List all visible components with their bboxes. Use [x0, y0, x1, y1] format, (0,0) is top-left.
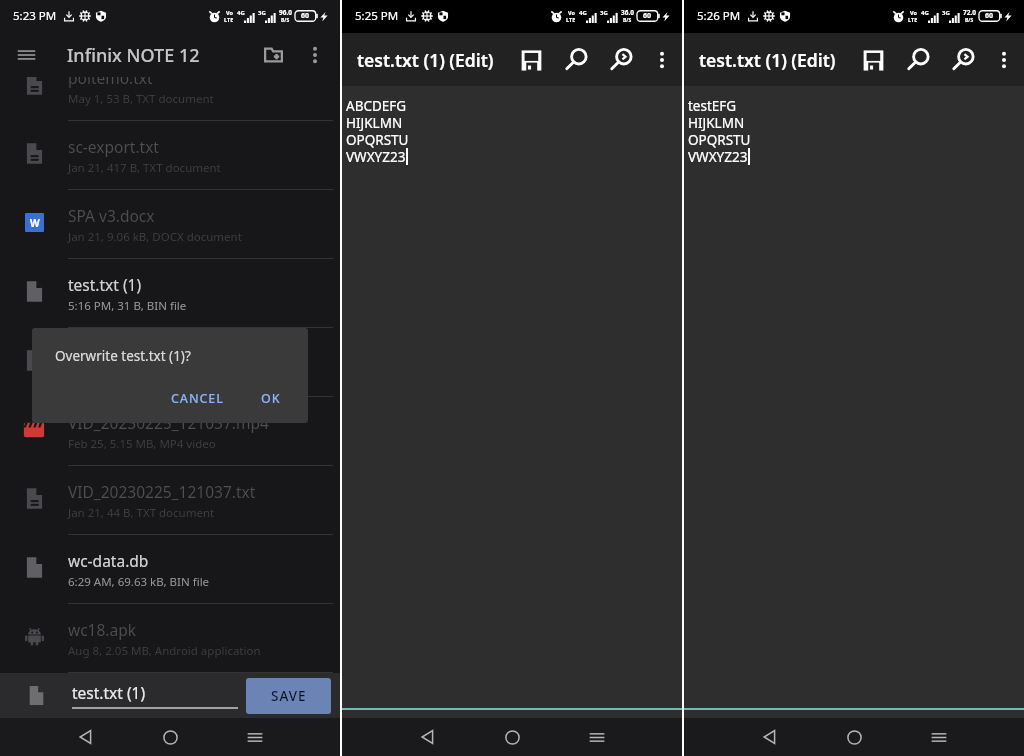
- staticText: B/S: [281, 17, 290, 24]
- button[interactable]: Back: [749, 718, 789, 756]
- staticText: 4G: [921, 9, 929, 17]
- button[interactable]: Open navigation drawer: [6, 35, 46, 75]
- staticText: wc18.apk: [68, 619, 137, 640]
- staticText: 6:29 AM, 69.63 kB, BIN file: [68, 574, 210, 590]
- staticText: OPQRSTU: [346, 131, 409, 148]
- staticText: Feb 25, 5.15 MB, MP4 video: [68, 436, 216, 452]
- button[interactable]: Recents: [919, 718, 959, 756]
- button[interactable]: Home: [150, 718, 190, 756]
- button[interactable]: Search: [897, 39, 939, 81]
- staticText: May 1, 53 B, TXT document: [68, 91, 214, 107]
- button[interactable]: Save: [852, 39, 894, 81]
- staticText: LTE: [224, 16, 234, 23]
- staticText: 5:16 PM, 31 B, BIN file: [68, 298, 187, 314]
- staticText: 5:26 PM: [697, 8, 741, 24]
- staticText: test.txt (1): [72, 682, 146, 703]
- staticText: W: [30, 216, 40, 230]
- button[interactable]: Search: [555, 39, 597, 81]
- staticText: test.txt (1): [68, 274, 142, 295]
- staticText: HIJKLMN: [688, 114, 745, 131]
- button[interactable]: Back: [407, 718, 447, 756]
- button[interactable]: More options: [644, 42, 680, 78]
- staticText: 96.0: [279, 8, 292, 17]
- button[interactable]: test.txt: [0, 328, 340, 397]
- staticText: 60: [985, 11, 994, 21]
- staticText: SAVE: [271, 687, 307, 705]
- button[interactable]: VID_20230225_121037.mp4: [0, 397, 340, 466]
- button[interactable]: Recents: [577, 718, 617, 756]
- staticText: B/S: [623, 17, 632, 24]
- staticText: Vo: [568, 9, 575, 16]
- staticText: 3G: [258, 9, 266, 17]
- staticText: Overwrite test.txt (1)?: [55, 347, 191, 365]
- staticText: 60: [301, 11, 310, 21]
- button[interactable]: New folder: [253, 35, 293, 75]
- staticText: 5:25 PM: [355, 8, 399, 24]
- button[interactable]: W: [0, 190, 340, 259]
- button[interactable]: Home: [492, 718, 532, 756]
- button[interactable]: OK: [252, 383, 290, 414]
- button[interactable]: Back: [65, 718, 105, 756]
- staticText: LTE: [566, 16, 576, 23]
- staticText: poltemo.txt: [68, 67, 153, 88]
- staticText: test.txt: [68, 343, 119, 364]
- staticText: CANCEL: [171, 390, 224, 407]
- staticText: 60: [643, 11, 652, 21]
- staticText: VID_20230225_121037.txt: [68, 481, 256, 502]
- staticText: 3G: [600, 9, 608, 17]
- button[interactable]: SAVE: [246, 678, 331, 714]
- staticText: Jan 21, 44 B, TXT document: [68, 505, 215, 521]
- staticText: 3G: [942, 9, 950, 17]
- button[interactable]: Home: [834, 718, 874, 756]
- button[interactable]: Search next: [942, 39, 984, 81]
- staticText: testEFG: [688, 97, 737, 114]
- staticText: Jan 21, 9.06 kB, DOCX document: [68, 229, 242, 245]
- staticText: VWXYZ23: [346, 148, 406, 165]
- staticText: Jan 21, 417 B, TXT document: [68, 160, 221, 176]
- button[interactable]: test.txt (1): [0, 259, 340, 328]
- button[interactable]: Save: [510, 39, 552, 81]
- staticText: sc-export.txt: [68, 136, 159, 157]
- button[interactable]: wc18.apk: [0, 604, 340, 673]
- button[interactable]: poltemo.txt: [0, 52, 340, 121]
- button[interactable]: More options: [986, 42, 1022, 78]
- staticText: test.txt (1) (Edit): [357, 48, 494, 72]
- button[interactable]: CANCEL: [162, 383, 233, 414]
- staticText: Infinix NOTE 12: [67, 43, 200, 68]
- staticText: LTE: [908, 16, 918, 23]
- button[interactable]: sc-export.txt: [0, 121, 340, 190]
- staticText: 72.0: [963, 8, 976, 17]
- staticText: Vo: [910, 9, 917, 16]
- button[interactable]: wc-data.db: [0, 535, 340, 604]
- staticText: OK: [261, 390, 281, 407]
- button[interactable]: Search next: [600, 39, 642, 81]
- staticText: VID_20230225_121037.mp4: [68, 412, 269, 433]
- staticText: 36.0: [621, 8, 634, 17]
- staticText: HIJKLMN: [346, 114, 403, 131]
- staticText: test.txt (1) (Edit): [699, 48, 836, 72]
- staticText: Vo: [226, 9, 233, 16]
- button[interactable]: VID_20230225_121037.txt: [0, 466, 340, 535]
- staticText: VWXYZ23: [688, 148, 748, 165]
- staticText: wc-data.db: [68, 550, 149, 571]
- button[interactable]: Recents: [235, 718, 275, 756]
- button[interactable]: File name: [72, 682, 238, 709]
- staticText: ABCDEFG: [346, 97, 407, 114]
- staticText: 4G: [237, 9, 245, 17]
- staticText: 5:23 PM: [13, 8, 57, 24]
- button[interactable]: More options: [297, 37, 333, 73]
- staticText: Aug 8, 2.05 MB, Android application: [68, 643, 261, 659]
- staticText: B/S: [965, 17, 974, 24]
- staticText: 4G: [579, 9, 587, 17]
- staticText: SPA v3.docx: [68, 205, 155, 226]
- staticText: OPQRSTU: [688, 131, 751, 148]
